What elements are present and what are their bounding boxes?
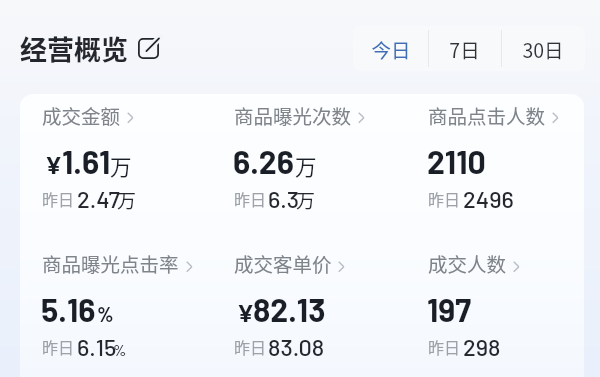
staticText: 2496	[463, 184, 514, 212]
staticText: 83.08	[268, 332, 325, 360]
button[interactable]	[34, 252, 222, 360]
staticText: 30日	[522, 35, 564, 63]
staticText: 昨日	[42, 187, 75, 210]
staticText: 昨日	[234, 187, 267, 210]
button[interactable]: Edit	[134, 34, 162, 62]
button[interactable]	[420, 104, 578, 212]
staticText: 6.15	[77, 332, 117, 360]
button[interactable]: 30日	[501, 26, 585, 71]
staticText: 6.26	[233, 142, 294, 180]
staticText: 成交金额	[42, 101, 121, 129]
staticText: ¥	[237, 297, 255, 327]
staticText: 经营概览	[20, 29, 128, 68]
staticText: 昨日	[428, 187, 461, 210]
staticText: 万	[110, 150, 132, 181]
staticText: 商品曝光点击率	[42, 249, 179, 277]
staticText: 成交人数	[428, 249, 507, 277]
staticText: 298	[463, 332, 501, 360]
staticText: 昨日	[42, 335, 75, 358]
staticText: 万	[295, 150, 317, 181]
staticText: %	[113, 340, 127, 359]
staticText: 商品点击人数	[428, 101, 546, 129]
staticText: 昨日	[234, 335, 267, 358]
button[interactable]	[226, 252, 414, 360]
button[interactable]: 今日	[353, 26, 428, 71]
staticText: 商品曝光次数	[234, 101, 352, 129]
staticText: 5.16	[41, 290, 96, 328]
staticText: 6.3	[268, 184, 300, 212]
button[interactable]: 7日	[428, 26, 501, 71]
staticText: 成交客单价	[234, 249, 332, 277]
button[interactable]	[420, 252, 578, 360]
staticText: %	[97, 302, 114, 326]
staticText: 万	[117, 186, 137, 214]
staticText: 今日	[371, 35, 411, 63]
staticText: 7日	[449, 35, 480, 63]
staticText: 2.47	[77, 184, 120, 212]
button[interactable]	[226, 104, 414, 212]
staticText: 昨日	[428, 335, 461, 358]
staticText: 1.61	[62, 142, 111, 180]
button[interactable]	[34, 104, 222, 212]
staticText: 82.13	[253, 290, 326, 328]
staticText: ¥	[45, 149, 63, 179]
staticText: 197	[427, 290, 472, 328]
staticText: 2110	[427, 142, 486, 180]
staticText: 万	[296, 186, 316, 214]
